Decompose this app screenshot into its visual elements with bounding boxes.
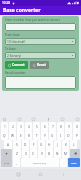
staticText: R <box>28 134 30 138</box>
button[interactable]: P <box>73 131 80 140</box>
button[interactable]: M <box>62 149 69 158</box>
staticText: 10:28 <box>2 1 11 5</box>
button[interactable]: U <box>49 131 56 140</box>
button[interactable]: Next <box>68 158 80 167</box>
staticText: . <box>63 161 64 165</box>
staticText: Convert <box>12 63 25 67</box>
staticText: L <box>73 143 75 147</box>
button[interactable]: 0 <box>73 122 80 131</box>
button[interactable]: Toolbar action 4 <box>60 117 64 121</box>
staticText: Next <box>71 161 77 164</box>
button[interactable]: D <box>22 140 29 149</box>
staticText: 7 <box>52 125 54 129</box>
button[interactable]: 4 <box>25 122 32 131</box>
button[interactable]: Toolbar action 3 <box>46 117 50 121</box>
staticText: G <box>40 143 43 147</box>
staticText: I <box>60 134 62 138</box>
staticText: 2 <box>12 125 14 129</box>
button[interactable]: B <box>46 149 53 158</box>
staticText: Base converter <box>3 7 41 14</box>
staticText: 2 (binary) <box>7 54 22 58</box>
staticText: 1 <box>4 125 6 129</box>
button[interactable]: Q <box>1 131 8 140</box>
button[interactable]: K <box>62 140 69 149</box>
button[interactable]: Y <box>41 131 48 140</box>
button[interactable]: V <box>38 149 45 158</box>
button[interactable]: E <box>17 131 24 140</box>
button[interactable]: 8 <box>57 122 64 131</box>
button[interactable]: English (US) <box>21 158 59 167</box>
staticText: To base <box>5 47 16 51</box>
staticText: Enter number that you want to convert <box>5 18 60 22</box>
staticText: 6 <box>44 125 46 129</box>
staticText: ?123 <box>4 161 10 164</box>
button[interactable]: Home <box>36 170 45 179</box>
button[interactable]: 3 <box>17 122 24 131</box>
staticText: A <box>7 143 10 147</box>
button[interactable]: 5 <box>33 122 40 131</box>
staticText: X <box>25 152 27 156</box>
button[interactable]: Shift <box>1 149 12 158</box>
staticText: 5 <box>36 125 38 129</box>
button[interactable]: Convert <box>5 61 28 69</box>
button[interactable]: H <box>46 140 53 149</box>
staticText: H <box>48 143 51 147</box>
staticText: N <box>56 152 59 156</box>
staticText: , <box>16 161 17 165</box>
button[interactable]: A <box>4 140 12 149</box>
button[interactable]: Toolbar action 0 <box>2 117 6 121</box>
button[interactable]: G <box>38 140 45 149</box>
button[interactable]: 10 (decimal) <box>5 38 76 45</box>
button[interactable]: R <box>25 131 32 140</box>
button[interactable]: C <box>30 149 37 158</box>
button[interactable]: Toolbar action 5 <box>75 117 79 121</box>
button[interactable]: L <box>70 140 77 149</box>
staticText: 10 (decimal) <box>7 40 26 44</box>
staticText: E <box>20 134 22 138</box>
staticText: C <box>32 152 35 156</box>
staticText: Z <box>16 152 18 156</box>
staticText: V <box>41 152 43 156</box>
button[interactable]: Reset <box>30 61 49 69</box>
button[interactable]: Symbols <box>1 158 12 167</box>
button[interactable]: 7 <box>49 122 56 131</box>
staticText: M <box>64 152 67 156</box>
button[interactable]: S <box>13 140 21 149</box>
button[interactable]: X <box>22 149 29 158</box>
staticText: From base <box>5 33 20 37</box>
button[interactable]: O <box>65 131 72 140</box>
button[interactable]: F <box>30 140 37 149</box>
button[interactable]: I <box>57 131 64 140</box>
button[interactable]: Toolbar action 1 <box>17 117 21 121</box>
staticText: P <box>76 134 78 138</box>
staticText: F <box>33 143 35 147</box>
button[interactable]: , <box>13 158 20 167</box>
button[interactable]: Back <box>59 170 68 179</box>
button[interactable]: W <box>9 131 16 140</box>
staticText: T <box>36 134 38 138</box>
button[interactable]: Toolbar action 2 <box>31 117 35 121</box>
button[interactable]: 1 <box>1 122 8 131</box>
button[interactable]: 2 (binary) <box>5 52 76 59</box>
button[interactable]: Backspace <box>70 149 80 158</box>
staticText: K <box>65 143 67 147</box>
staticText: Q <box>3 134 6 138</box>
staticText: Result number <box>5 71 26 75</box>
button[interactable]: J <box>54 140 61 149</box>
button[interactable]: T <box>33 131 40 140</box>
staticText: 4 <box>28 125 30 129</box>
button[interactable]: Z <box>13 149 21 158</box>
staticText: W <box>11 134 14 138</box>
button[interactable]: Recents <box>14 170 23 179</box>
button[interactable]: 6 <box>41 122 48 131</box>
button[interactable] <box>5 76 76 89</box>
button[interactable] <box>5 23 76 31</box>
button[interactable]: N <box>54 149 61 158</box>
staticText: Y <box>44 134 46 138</box>
staticText: S <box>16 143 18 147</box>
staticText: B <box>48 152 51 156</box>
staticText: 8 <box>60 125 62 129</box>
button[interactable]: 9 <box>65 122 72 131</box>
button[interactable]: 2 <box>9 122 16 131</box>
